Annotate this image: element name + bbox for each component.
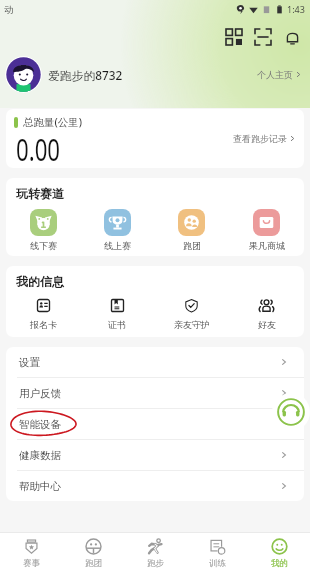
staticText: 证书 [108,319,126,330]
button[interactable]: 查看跑步记录 [233,133,296,144]
button[interactable]: 跑团 [154,209,229,251]
staticText: 我的信息 [16,274,64,289]
button[interactable]: 证书 [80,298,154,330]
staticText: 训练 [209,558,226,569]
button[interactable]: 客服 [272,393,310,431]
staticText: 线上赛 [104,240,131,251]
staticText: 爱跑步的8732 [48,67,123,83]
staticText: 我的 [271,558,288,569]
staticText: 玩转赛道 [16,186,64,201]
staticText: 查看跑步记录 [233,133,287,144]
button[interactable]: 跑步 [124,538,186,569]
button[interactable]: 用户反馈 [6,378,304,408]
staticText: 好友 [258,319,276,330]
button[interactable]: 线下赛 [6,209,80,251]
staticText: 果凡商城 [249,240,285,251]
button[interactable]: 总跑量(公里) [6,109,304,168]
button[interactable]: 好友 [229,298,304,330]
button[interactable]: 扫一扫 [252,26,274,48]
button[interactable]: 设置 [6,347,304,377]
staticText: 动 [4,4,13,15]
button[interactable]: 赛事 [0,538,62,569]
button[interactable]: 健康数据 [6,440,304,470]
button[interactable]: 个人主页 [257,69,302,80]
staticText: 个人主页 [257,69,293,80]
staticText: 跑步 [147,558,164,569]
staticText: 1:43 [287,3,305,15]
staticText: 亲友守护 [174,319,210,330]
staticText: 0.00 [16,129,60,168]
button[interactable]: 跑团 [62,538,124,569]
staticText: 线下赛 [30,240,57,251]
staticText: 设置 [19,356,40,369]
staticText: 健康数据 [19,449,61,462]
button[interactable]: 我的 [248,538,310,569]
button[interactable]: 报名卡 [6,298,80,330]
button[interactable]: 帮助中心 [6,471,304,501]
button[interactable]: 智能设备 [6,409,304,439]
staticText: 跑团 [85,558,102,569]
button[interactable]: 亲友守护 [154,298,229,330]
button[interactable]: 通知 [281,26,303,48]
button[interactable]: 线上赛 [80,209,154,251]
staticText: 帮助中心 [19,480,61,493]
staticText: 报名卡 [30,319,57,330]
button[interactable]: 训练 [186,538,248,569]
staticText: 智能设备 [19,418,61,431]
staticText: 跑团 [183,240,201,251]
staticText: 用户反馈 [19,387,61,400]
staticText: 总跑量(公里) [23,115,83,129]
button[interactable]: 二维码 [223,26,245,48]
button[interactable]: 果凡商城 [229,209,304,251]
staticText: 赛事 [23,558,40,569]
button[interactable]: 头像 [5,56,42,93]
